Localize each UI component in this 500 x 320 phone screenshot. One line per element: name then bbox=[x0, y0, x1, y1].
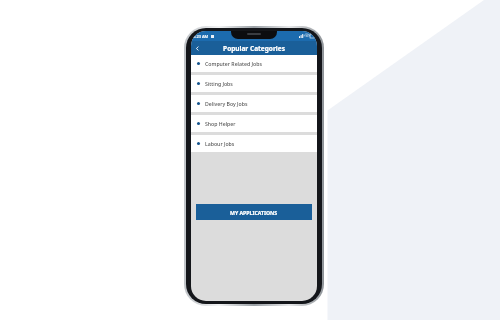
button[interactable]: Shop Helper bbox=[191, 115, 317, 132]
staticText: MY APPLICATIONS bbox=[230, 209, 278, 216]
button[interactable]: Computer Related Jobs bbox=[191, 55, 317, 72]
staticText: Popular Categories bbox=[223, 44, 285, 53]
button[interactable]: Sitting Jobs bbox=[191, 75, 317, 92]
staticText: Sitting Jobs bbox=[205, 80, 233, 87]
button[interactable]: Delivery Boy Jobs bbox=[191, 95, 317, 112]
staticText: Delivery Boy Jobs bbox=[205, 100, 248, 107]
staticText: Labour Jobs bbox=[205, 140, 235, 147]
button[interactable]: Back bbox=[191, 42, 203, 54]
staticText: 2:23 AM bbox=[193, 34, 209, 39]
button[interactable]: Labour Jobs bbox=[191, 135, 317, 152]
staticText: Shop Helper bbox=[205, 120, 236, 127]
staticText: Computer Related Jobs bbox=[205, 60, 262, 67]
button[interactable]: MY APPLICATIONS bbox=[196, 204, 312, 220]
